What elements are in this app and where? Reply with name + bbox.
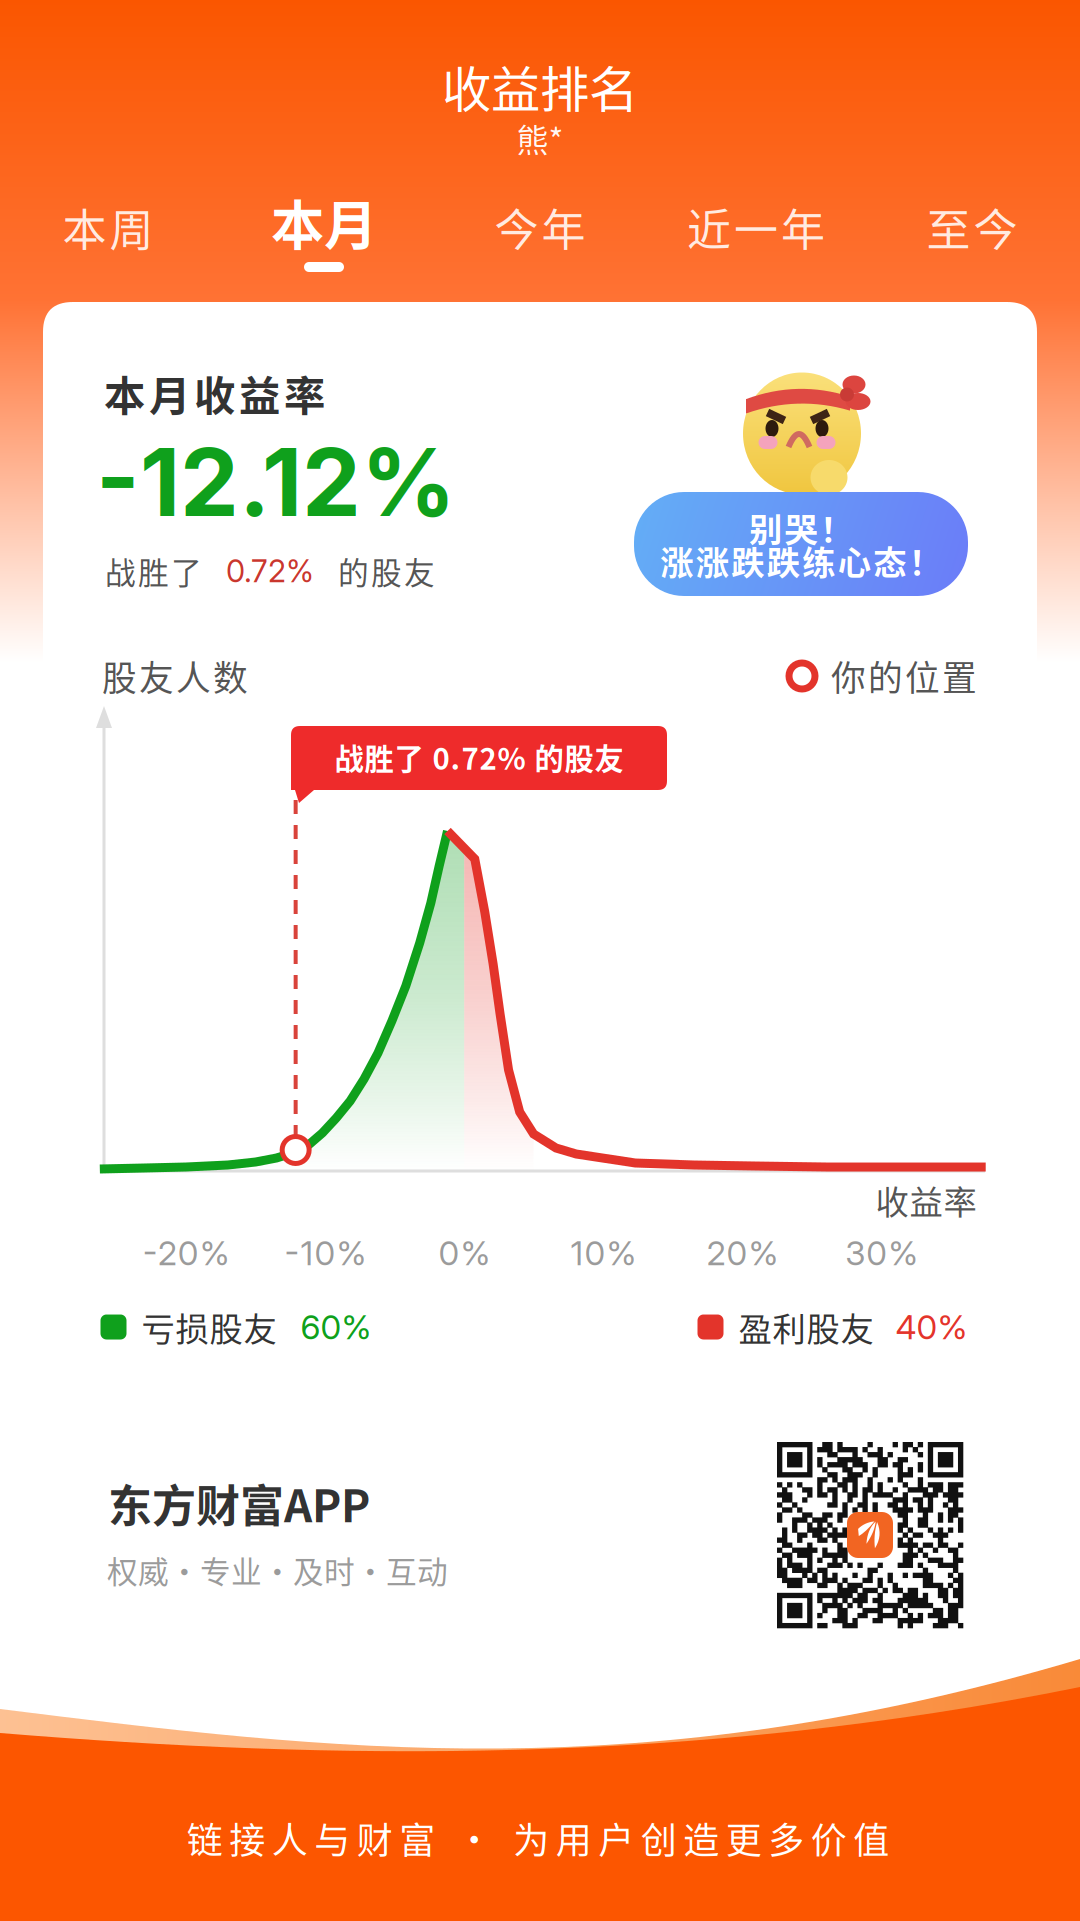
staticText: 的股友: [338, 549, 435, 593]
staticText: 10%: [570, 1233, 636, 1273]
staticText: 熊*: [516, 115, 563, 161]
staticText: 东方财富APP: [108, 1471, 370, 1535]
staticText: 收益率: [875, 1176, 976, 1224]
staticText: 收益排名: [442, 50, 638, 122]
staticText: 60%: [300, 1307, 371, 1347]
staticText: -12.12%: [96, 425, 456, 538]
staticText: 40%: [895, 1307, 967, 1347]
staticText: 20%: [707, 1233, 779, 1273]
staticText: 今年: [494, 195, 585, 259]
staticText: 战胜了 0.72% 的股友: [334, 736, 623, 778]
staticText: 链接人与财富 · 为用户创造更多价值: [187, 1812, 889, 1864]
button[interactable]: 本月: [216, 185, 432, 283]
staticText: 近一年: [687, 195, 825, 259]
button[interactable]: 近一年: [648, 185, 864, 283]
staticText: 0.72%: [226, 552, 314, 589]
staticText: 本月: [271, 183, 377, 261]
staticText: 0%: [438, 1233, 490, 1273]
staticText: 你的位置: [831, 651, 977, 701]
staticText: 本周: [62, 195, 153, 259]
button[interactable]: 至今: [864, 185, 1080, 283]
staticText: 至今: [926, 195, 1017, 259]
staticText: 本月收益率: [104, 363, 325, 423]
staticText: 亏损股友: [141, 1303, 276, 1351]
button[interactable]: 本周: [0, 185, 216, 283]
staticText: 战胜了: [105, 549, 202, 593]
button[interactable]: 今年: [432, 185, 648, 283]
staticText: 别哭！: [749, 503, 853, 552]
staticText: -20%: [143, 1233, 230, 1273]
staticText: 30%: [845, 1233, 918, 1273]
staticText: 涨涨跌跌练心态！: [660, 536, 942, 585]
staticText: -10%: [284, 1233, 366, 1273]
staticText: 盈利股友: [738, 1303, 873, 1351]
staticText: 权威·专业·及时·互动: [107, 1548, 448, 1592]
staticText: 股友人数: [102, 651, 248, 701]
